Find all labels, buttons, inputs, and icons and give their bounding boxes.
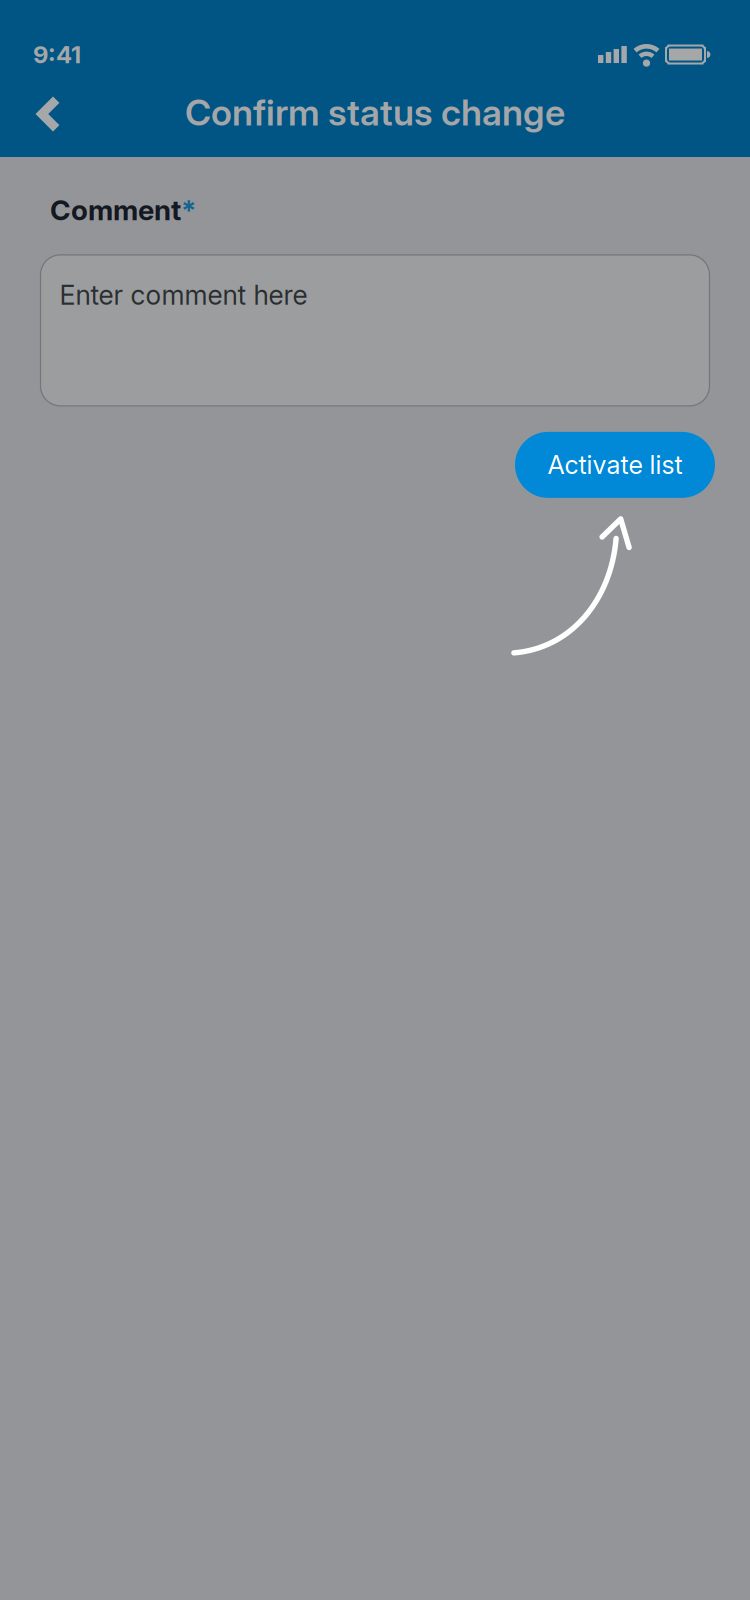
button[interactable]: Activate list — [515, 432, 715, 498]
button[interactable]: Back — [0, 84, 76, 157]
staticText: Activate list — [547, 450, 682, 480]
staticText: Confirm status change — [185, 91, 565, 134]
button[interactable]: Enter comment here — [40, 255, 709, 406]
staticText: Comment — [50, 193, 181, 227]
staticText: 9:41 — [33, 40, 81, 69]
staticText: Enter comment here — [59, 279, 307, 311]
staticText: * — [181, 193, 196, 227]
